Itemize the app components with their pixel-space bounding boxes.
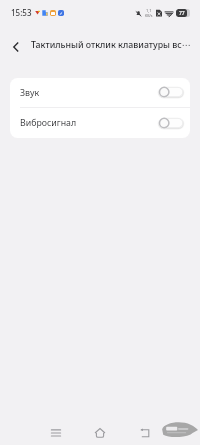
button[interactable]: Вибросигнал <box>10 108 190 138</box>
staticText: KB/s <box>145 13 153 18</box>
button[interactable]: Home <box>87 420 113 445</box>
staticText: Тактильный отклик клавиатуры вс⋯ <box>31 39 191 51</box>
button[interactable]: Back <box>132 420 158 445</box>
staticText: 1,1 <box>146 8 152 13</box>
button[interactable]: Back <box>4 35 28 59</box>
staticText: 15:53 <box>11 7 32 18</box>
button[interactable]: Toggle <box>159 117 183 130</box>
button[interactable]: Звук <box>10 78 190 107</box>
button[interactable]: Toggle <box>159 86 183 99</box>
staticText: Звук <box>20 87 40 99</box>
button[interactable]: Recents <box>43 420 69 445</box>
staticText: Вибросигнал <box>20 117 77 129</box>
staticText: 77 <box>179 10 185 17</box>
